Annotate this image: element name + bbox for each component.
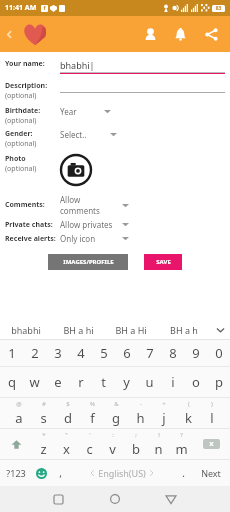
staticText: f	[41, 5, 48, 12]
button[interactable]: (	[176, 398, 200, 428]
button[interactable]: Select..	[60, 129, 117, 140]
staticText: c	[86, 440, 93, 458]
button[interactable]: SAVE	[144, 254, 182, 270]
button[interactable]: 5	[92, 340, 115, 366]
staticText: +	[162, 400, 166, 408]
button[interactable]: r	[69, 367, 92, 397]
button[interactable]: Expand suggestions	[210, 320, 230, 339]
staticText: IMAGES/PROFILE	[63, 258, 114, 266]
button[interactable]: !	[147, 429, 170, 459]
button[interactable]: #	[31, 398, 56, 428]
staticText: g	[112, 409, 120, 427]
staticText: 5	[100, 344, 108, 362]
staticText: 6	[123, 344, 131, 362]
button[interactable]: 3	[46, 340, 69, 366]
staticText: n	[154, 440, 163, 458]
button[interactable]: Space	[69, 460, 175, 486]
button[interactable]: *	[32, 429, 55, 459]
staticText: i	[171, 373, 175, 391]
button[interactable]: Back	[0, 16, 18, 52]
button[interactable]: t	[92, 367, 115, 397]
staticText: u	[145, 373, 154, 391]
button[interactable]: BH a hi	[52, 320, 104, 339]
button[interactable]: Next	[192, 460, 230, 486]
button[interactable]: e	[46, 367, 69, 397]
button[interactable]: %	[80, 398, 104, 428]
button[interactable]: 2	[23, 340, 46, 366]
button[interactable]: i	[161, 367, 184, 397]
button[interactable]: 1	[0, 340, 23, 366]
staticText: x	[63, 440, 70, 458]
button[interactable]: :	[101, 429, 124, 459]
button[interactable]: Add photo	[60, 154, 92, 186]
button[interactable]: Comments:	[5, 194, 129, 216]
staticText: y	[123, 373, 130, 391]
button[interactable]: u	[138, 367, 161, 397]
staticText: 4	[77, 344, 85, 362]
button[interactable]: y	[115, 367, 138, 397]
button[interactable]: Backspace	[193, 429, 230, 459]
button[interactable]: IMAGES/PROFILE	[48, 254, 128, 270]
staticText: -	[140, 400, 142, 408]
staticText: 7	[146, 344, 154, 362]
button[interactable]: ;	[124, 429, 147, 459]
staticText: ?123	[6, 467, 26, 479]
button[interactable]: ,	[52, 460, 69, 486]
button[interactable]: Notifications	[167, 18, 193, 50]
button[interactable]: Year	[60, 106, 111, 117]
button[interactable]: Receive alerts:	[5, 233, 129, 244]
button[interactable]: 6	[115, 340, 138, 366]
staticText: 2	[31, 344, 39, 362]
button[interactable]: o	[184, 367, 207, 397]
staticText: (optional)	[5, 139, 37, 149]
staticText: !	[158, 431, 160, 439]
button[interactable]: +	[152, 398, 176, 428]
button[interactable]: Home	[18, 19, 52, 49]
button[interactable]: .	[175, 460, 192, 486]
button[interactable]: 4	[69, 340, 92, 366]
button[interactable]: w	[23, 367, 46, 397]
staticText: @	[16, 400, 22, 408]
button[interactable]: 8	[161, 340, 184, 366]
staticText: "	[65, 431, 68, 439]
button[interactable]: ?123	[0, 460, 31, 486]
button[interactable]: q	[0, 367, 23, 397]
staticText: 0	[215, 344, 223, 362]
staticText: j	[162, 409, 166, 427]
button[interactable]: 0	[207, 340, 230, 366]
button[interactable]: )	[200, 398, 224, 428]
button[interactable]: Recents	[41, 486, 76, 512]
staticText: x	[209, 439, 214, 449]
button[interactable]: "	[55, 429, 78, 459]
button[interactable]: Private chats:	[5, 219, 129, 230]
staticText: .	[182, 466, 185, 480]
button[interactable]: $	[56, 398, 80, 428]
staticText: d	[64, 409, 72, 427]
staticText: %	[90, 400, 95, 408]
button[interactable]: 9	[184, 340, 207, 366]
staticText: Comments:	[5, 200, 45, 210]
button[interactable]: Back	[153, 486, 188, 512]
button[interactable]: bhabhi	[0, 320, 52, 339]
button[interactable]: ?	[170, 429, 193, 459]
button[interactable]: &	[104, 398, 128, 428]
staticText: 3	[54, 344, 62, 362]
button[interactable]: p	[207, 367, 230, 397]
button[interactable]: Share	[197, 18, 225, 50]
staticText: Allow comments	[60, 194, 122, 216]
button[interactable]: '	[78, 429, 101, 459]
button[interactable]: BH a h	[157, 320, 210, 339]
button[interactable]: Emoji	[31, 460, 52, 486]
staticText: bhabhi|	[60, 59, 95, 71]
button[interactable]: BH a Hi	[104, 320, 157, 339]
button[interactable]: -	[128, 398, 152, 428]
staticText: 1	[8, 344, 16, 362]
button[interactable]: 7	[138, 340, 161, 366]
staticText: BH a hi	[63, 324, 94, 336]
button[interactable]: Home	[97, 486, 132, 512]
staticText: Birthdate:	[5, 106, 41, 116]
button[interactable]: Profile	[137, 18, 163, 50]
button[interactable]: Shift	[0, 429, 32, 459]
staticText: s	[40, 409, 47, 427]
button[interactable]: @	[6, 398, 31, 428]
